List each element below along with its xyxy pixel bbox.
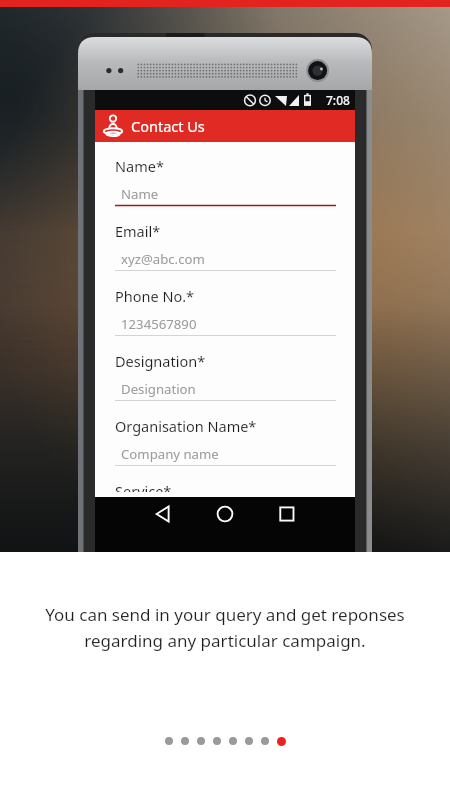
staticText: Company name xyxy=(121,445,219,463)
staticText: You can send in your query and get repon… xyxy=(22,603,428,652)
button[interactable] xyxy=(165,737,173,745)
staticText: Designation xyxy=(121,380,196,398)
button[interactable]: 1234567890 xyxy=(115,314,336,337)
button[interactable]: Contact Us xyxy=(95,110,355,142)
staticText: Organisation Name* xyxy=(115,416,257,436)
staticText: xyz@abc.com xyxy=(121,250,205,268)
staticText: Name* xyxy=(115,156,164,176)
button[interactable]: Name xyxy=(115,184,336,207)
button[interactable] xyxy=(213,737,221,745)
staticText: Phone No.* xyxy=(115,286,195,306)
button[interactable] xyxy=(261,737,269,745)
staticText: 1234567890 xyxy=(121,315,197,333)
staticText: Email* xyxy=(115,221,161,241)
other: Contact Us xyxy=(102,115,124,137)
staticText: 7:08 xyxy=(326,92,350,108)
staticText: Designation* xyxy=(115,351,206,371)
staticText: Service* xyxy=(115,481,172,492)
button[interactable]: Company name xyxy=(115,444,336,467)
button[interactable] xyxy=(229,737,237,745)
button[interactable] xyxy=(181,737,189,745)
button[interactable] xyxy=(245,737,253,745)
staticText: Contact Us xyxy=(131,116,205,136)
staticText: Name xyxy=(121,185,159,203)
button[interactable] xyxy=(277,737,286,746)
button[interactable] xyxy=(197,737,205,745)
button[interactable]: xyz@abc.com xyxy=(115,249,336,272)
button[interactable]: Designation xyxy=(115,379,336,402)
